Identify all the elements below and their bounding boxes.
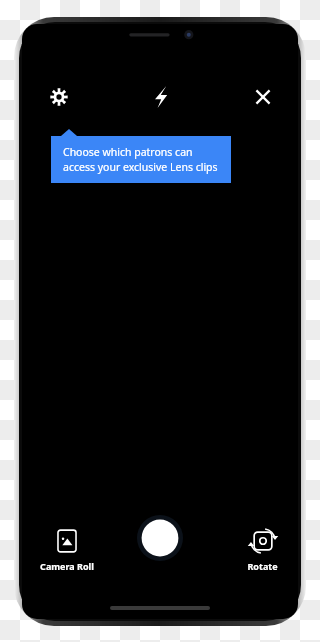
button[interactable]: Rotate: [247, 528, 278, 572]
staticText: Camera Roll: [40, 560, 94, 572]
button[interactable]: Choose which patrons can access your exc…: [51, 129, 231, 183]
button[interactable]: Flash: [144, 80, 178, 114]
button[interactable]: Shutter: [137, 515, 183, 561]
staticText: Choose which patrons can access your exc…: [63, 145, 219, 174]
button[interactable]: Camera Roll: [40, 528, 94, 572]
button[interactable]: Settings: [44, 82, 74, 112]
button[interactable]: Close: [248, 82, 278, 112]
staticText: Rotate: [247, 560, 278, 572]
